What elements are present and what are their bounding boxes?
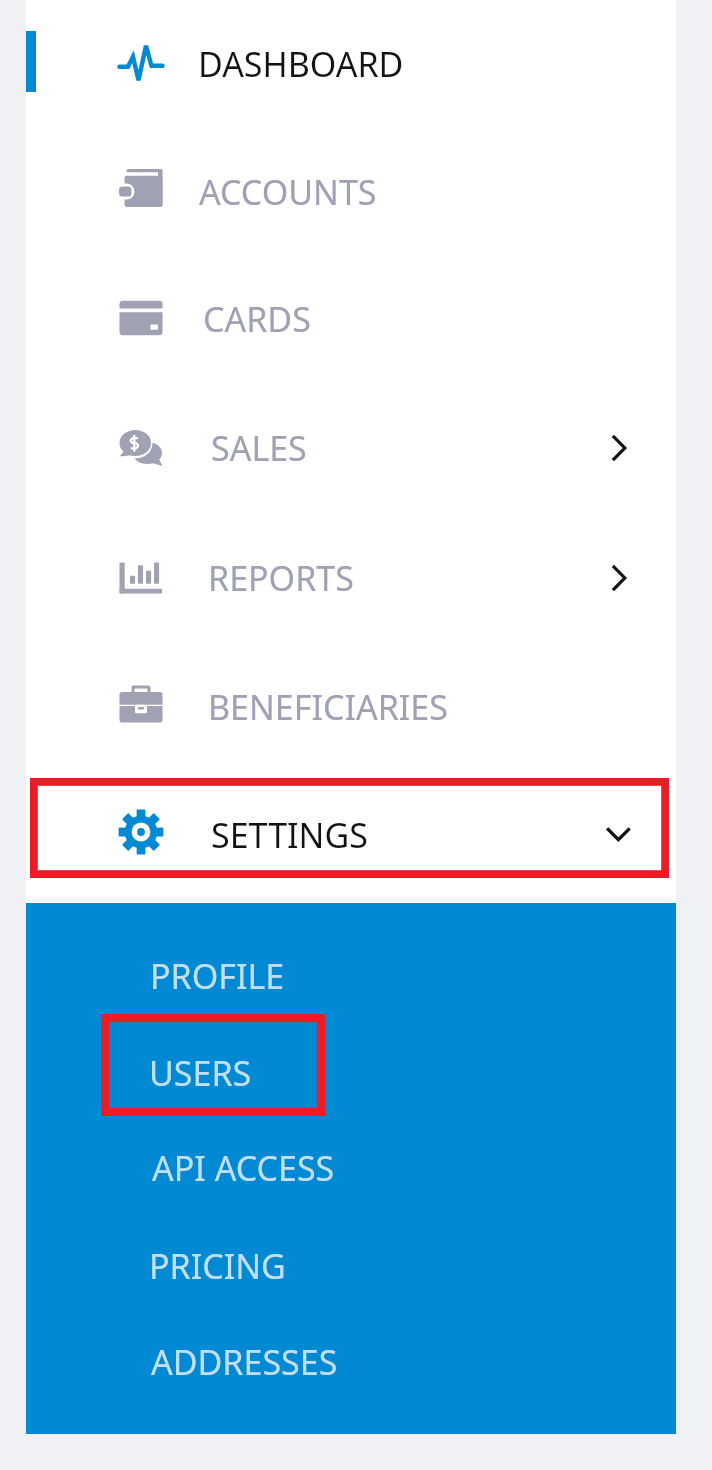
button[interactable]: ADDRESSES [26, 1314, 676, 1410]
button[interactable]: PRICING [26, 1218, 676, 1314]
button[interactable]: API ACCESS [26, 1120, 676, 1216]
button[interactable]: Expand SALES [592, 422, 644, 474]
staticText: SETTINGS [211, 812, 368, 858]
button[interactable]: Collapse SETTINGS [592, 809, 644, 861]
button[interactable]: Expand REPORTS [592, 552, 644, 604]
button[interactable]: SETTINGS [26, 771, 676, 899]
button[interactable]: CARDS [26, 255, 676, 383]
button[interactable]: BENEFICIARIES [26, 643, 676, 771]
staticText: DASHBOARD [198, 41, 404, 87]
button[interactable]: PROFILE [26, 928, 676, 1024]
button[interactable]: REPORTS [26, 514, 676, 642]
button[interactable]: USERS [26, 1025, 676, 1121]
button[interactable]: SALES [26, 384, 676, 512]
staticText: API ACCESS [152, 1145, 335, 1191]
staticText: BENEFICIARIES [208, 684, 448, 730]
staticText: REPORTS [208, 555, 354, 601]
staticText: PRICING [149, 1243, 286, 1289]
staticText: PROFILE [150, 953, 285, 999]
staticText: CARDS [203, 296, 311, 342]
staticText: SALES [211, 425, 307, 471]
staticText: ADDRESSES [151, 1339, 338, 1385]
staticText: ACCOUNTS [199, 169, 377, 215]
button[interactable]: ACCOUNTS [26, 128, 676, 256]
button[interactable]: DASHBOARD [26, 0, 676, 128]
staticText: USERS [149, 1050, 252, 1096]
